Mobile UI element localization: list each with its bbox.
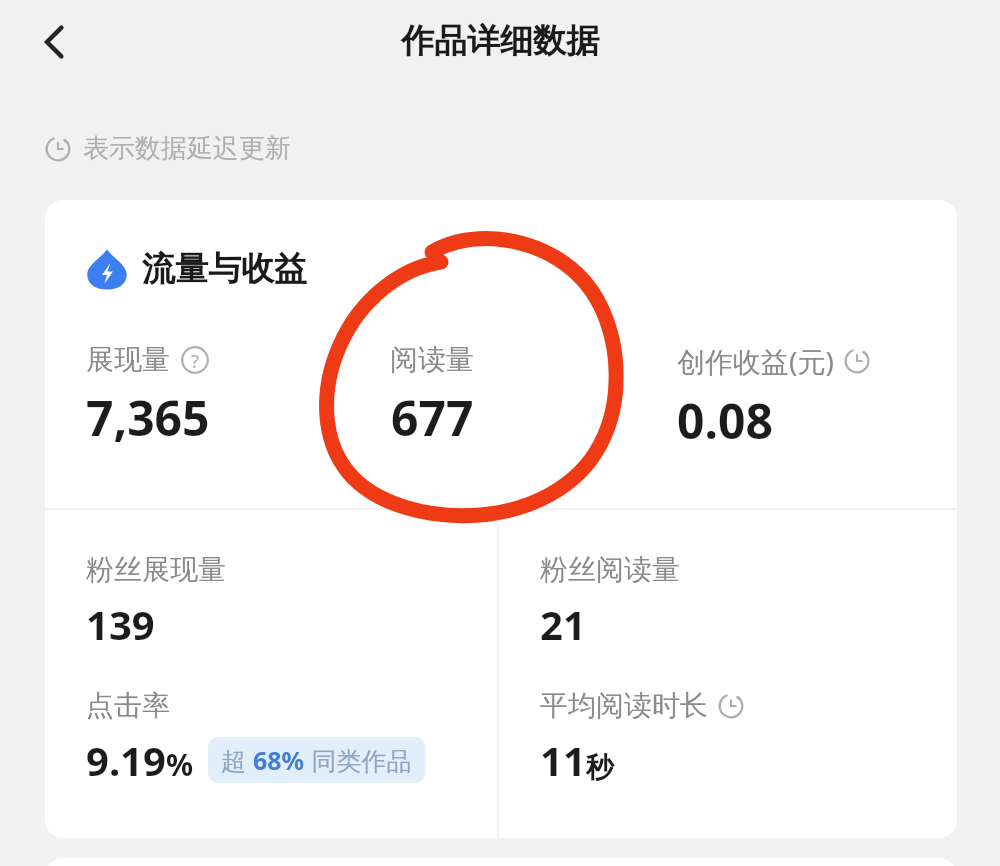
staticText: 7,365 [86,385,210,450]
staticText: 点击率 [86,688,170,723]
staticText: 21 [540,597,586,651]
staticText: 创作收益(元) [677,342,834,380]
staticText: 9.19 [86,733,166,787]
staticText: 展现量 [86,342,170,377]
staticText: 11 [540,733,586,787]
staticText: 表示数据延迟更新 [83,132,291,165]
staticText: 139 [86,597,155,651]
button[interactable]: Back [17,4,93,80]
staticText: ? [191,348,200,373]
staticText: 超 [221,743,253,777]
staticText: 秒 [586,750,614,785]
staticText: 粉丝阅读量 [540,552,680,587]
staticText: 677 [391,385,474,450]
staticText: 0.08 [677,388,773,453]
button[interactable]: 展现量说明 [180,345,210,375]
button[interactable]: 超 [208,737,425,783]
staticText: 作品详细数据 [401,20,599,62]
staticText: 流量与收益 [142,248,307,290]
button[interactable]: 流量与收益 [86,248,307,290]
staticText: % [166,744,194,785]
staticText: 阅读量 [390,342,474,377]
staticText: 同类作品 [305,743,412,777]
staticText: 68% [253,743,305,777]
staticText: 粉丝展现量 [86,552,226,587]
staticText: 平均阅读时长 [540,688,708,723]
